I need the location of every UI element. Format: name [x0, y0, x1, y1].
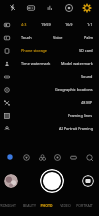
button[interactable]: Aperture	[51, 151, 63, 163]
staticText: 48 MP	[81, 100, 93, 105]
staticText: NIGHT	[5, 203, 16, 208]
staticText: Touch	[21, 35, 32, 40]
button[interactable]: Option 2	[1, 32, 13, 44]
button[interactable]: Geographic locations	[55, 83, 93, 96]
button[interactable]: Framing lines	[68, 109, 93, 122]
button[interactable]: Sound	[81, 70, 93, 83]
button[interactable]: Option 5	[1, 71, 13, 83]
button[interactable]: 1:1	[87, 18, 93, 31]
staticText: Geographic locations	[55, 87, 93, 92]
button[interactable]: Option 3	[1, 45, 13, 57]
button[interactable]: Option 7	[1, 97, 13, 109]
button[interactable]: 48 MP	[81, 96, 93, 109]
button[interactable]: Flash off	[5, 0, 20, 15]
button[interactable]: Gallery	[4, 174, 18, 188]
button[interactable]: Beauty	[20, 151, 32, 163]
button[interactable]: Timer	[61, 0, 76, 15]
button[interactable]: VIDEO	[54, 199, 76, 212]
button[interactable]: Settings	[79, 0, 94, 15]
staticText: Palm	[84, 35, 93, 40]
staticText: 1:1	[87, 22, 93, 27]
staticText: 4:3	[21, 22, 27, 27]
staticText: PHOTO	[40, 203, 53, 208]
button[interactable]: PHOTO	[35, 199, 57, 212]
staticText: 19:59	[41, 22, 51, 27]
staticText: Model watermark	[61, 61, 93, 66]
button[interactable]: Touch	[21, 31, 32, 44]
button[interactable]: NIGHT	[0, 199, 21, 212]
staticText: PRO	[0, 203, 6, 208]
button[interactable]: Option 1	[1, 19, 13, 31]
staticText: Sound	[81, 74, 93, 79]
button[interactable]: Switch camera	[82, 175, 94, 187]
button[interactable]: HDR	[23, 0, 38, 15]
button[interactable]: More settings	[83, 151, 95, 163]
button[interactable]: PRO	[0, 199, 13, 212]
button[interactable]: White balance	[67, 151, 79, 163]
button[interactable]: Option 4	[1, 58, 13, 70]
button[interactable]: 16:9	[65, 18, 73, 31]
button[interactable]: BEAUTY	[18, 199, 40, 212]
staticText: PORTRAIT	[76, 203, 93, 208]
button[interactable]: Option 8	[1, 110, 13, 122]
button[interactable]: Shutter	[40, 169, 64, 193]
button[interactable]: Option 6	[1, 84, 13, 96]
button[interactable]: Time watermark	[21, 57, 51, 70]
button[interactable]: SD card	[79, 44, 93, 57]
button[interactable]: Filters	[36, 151, 48, 163]
staticText: Phone storage	[21, 48, 48, 53]
button[interactable]: Model watermark	[61, 57, 93, 70]
staticText: Framing lines	[68, 113, 93, 118]
button[interactable]: AI Portrait Framing	[59, 122, 93, 135]
staticText: VIDEO	[60, 203, 71, 208]
button[interactable]: Color mode	[4, 151, 16, 163]
staticText: BEAUTY	[23, 203, 36, 208]
button[interactable]: PORTRAIT	[73, 199, 95, 212]
staticText: Time watermark	[21, 61, 51, 66]
button[interactable]: Option 9	[1, 123, 13, 135]
button[interactable]: Palm	[84, 31, 93, 44]
button[interactable]: 19:59	[41, 18, 51, 31]
button[interactable]: Voice	[53, 31, 63, 44]
staticText: 16:9	[65, 22, 73, 27]
button[interactable]: Phone storage	[21, 44, 48, 57]
staticText: AI Portrait Framing	[59, 126, 93, 131]
staticText: Voice	[53, 35, 63, 40]
staticText: SD card	[79, 48, 93, 53]
button[interactable]: 4:3	[21, 18, 27, 31]
button[interactable]: AI scene	[42, 0, 57, 15]
